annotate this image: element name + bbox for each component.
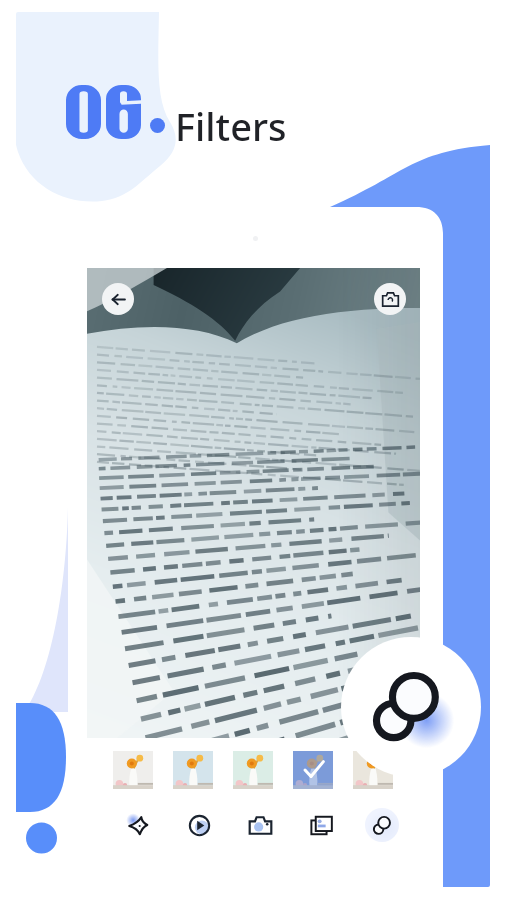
button[interactable]: Camera [243, 808, 277, 842]
button[interactable]: Enhance [121, 808, 155, 842]
button[interactable]: Filters [365, 808, 399, 842]
button[interactable]: Switch camera [374, 283, 406, 315]
button[interactable]: Video [182, 808, 216, 842]
button[interactable] [233, 751, 273, 789]
button[interactable]: Apply filter [341, 637, 481, 777]
button[interactable] [353, 751, 393, 789]
button[interactable]: Back [102, 283, 134, 315]
button[interactable]: Gallery [304, 808, 338, 842]
button[interactable] [113, 751, 153, 789]
button[interactable] [173, 751, 213, 789]
button[interactable] [293, 751, 333, 789]
staticText: Filters [175, 100, 287, 152]
